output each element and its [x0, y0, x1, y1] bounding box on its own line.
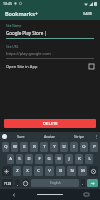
button[interactable]: K	[75, 154, 83, 164]
staticText: SAVE	[83, 11, 93, 16]
button[interactable]: DELETE	[4, 119, 96, 128]
button[interactable]: Avatar	[35, 132, 64, 141]
button[interactable]: G	[45, 154, 53, 164]
button[interactable]: B	[56, 166, 65, 176]
staticText: B	[59, 168, 62, 174]
staticText: Q	[4, 144, 8, 150]
staticText: T	[43, 144, 46, 150]
button[interactable]: Stripe	[64, 132, 93, 141]
button[interactable]: Back	[0, 189, 28, 200]
button[interactable]: SAVE	[81, 10, 95, 17]
button[interactable]: Enter	[87, 179, 98, 187]
button[interactable]: R	[30, 142, 38, 152]
button[interactable]: W	[11, 142, 18, 152]
button[interactable]: English	[31, 179, 79, 187]
button[interactable]: Voice input	[2, 134, 7, 139]
staticText: Site URL	[6, 45, 19, 49]
button[interactable]: Sure	[7, 132, 35, 141]
staticText: F	[38, 156, 41, 162]
staticText: H	[57, 156, 61, 162]
button[interactable]: Bookmarks+	[5, 10, 38, 17]
staticText: E	[23, 144, 26, 150]
staticText: Site Name	[6, 24, 22, 28]
button[interactable]: Q	[2, 142, 9, 152]
staticText: Google Play Store	[6, 30, 44, 36]
staticText: https://play.google.com	[6, 51, 51, 56]
staticText: G	[47, 156, 51, 162]
staticText: I	[73, 144, 75, 150]
button[interactable]: Period	[81, 179, 85, 187]
button[interactable]: Open Site in App	[6, 64, 94, 69]
staticText: ?123	[4, 181, 12, 186]
button[interactable]: S	[16, 154, 23, 164]
staticText: R	[33, 144, 36, 150]
button[interactable]: N	[67, 166, 76, 176]
button[interactable]: Backspace	[89, 166, 98, 176]
button[interactable]: O	[80, 142, 88, 152]
button[interactable]: L	[85, 154, 93, 164]
staticText: DELETE	[43, 121, 58, 127]
staticText: M	[81, 168, 85, 174]
staticText: L	[88, 156, 91, 162]
staticText: W	[13, 144, 17, 150]
staticText: Stripe	[74, 134, 84, 139]
button[interactable]: P	[90, 142, 98, 152]
button[interactable]: D	[25, 154, 33, 164]
staticText: K	[78, 156, 81, 162]
staticText: V	[48, 168, 51, 174]
staticText: 10:45	[3, 1, 12, 6]
staticText: Open Site in App	[6, 64, 38, 69]
button[interactable]: J	[65, 154, 73, 164]
staticText: .	[82, 181, 84, 186]
staticText: ,	[17, 181, 19, 186]
staticText: A	[9, 156, 12, 162]
staticText: U	[62, 144, 66, 150]
staticText: J	[68, 156, 70, 162]
button[interactable]: F	[35, 154, 43, 164]
button[interactable]: V	[45, 166, 54, 176]
button[interactable]: ?123	[2, 179, 13, 187]
button[interactable]: Emoji	[22, 179, 29, 187]
staticText: N	[70, 168, 74, 174]
button[interactable]: A	[7, 154, 14, 164]
button[interactable]: H	[55, 154, 63, 164]
staticText: C	[37, 168, 40, 174]
button[interactable]: T	[40, 142, 48, 152]
button[interactable]: More suggestions	[93, 132, 98, 141]
staticText: Z	[16, 168, 19, 174]
button[interactable]: Keyboard	[72, 189, 100, 200]
staticText: P	[93, 144, 96, 150]
button[interactable]: X	[23, 166, 32, 176]
button[interactable]: E	[20, 142, 28, 152]
staticText: D	[27, 156, 31, 162]
button[interactable]: M	[78, 166, 87, 176]
button[interactable]: Y	[50, 142, 58, 152]
staticText: Y	[53, 144, 56, 150]
staticText: Avatar	[44, 134, 55, 139]
staticText: English	[50, 181, 61, 185]
staticText: X	[26, 168, 29, 174]
button[interactable]: Z	[13, 166, 21, 176]
button[interactable]: C	[34, 166, 43, 176]
button[interactable]: Shift	[2, 166, 11, 176]
button[interactable]: Comma	[15, 179, 20, 187]
staticText: O	[82, 144, 86, 150]
staticText: Sure	[17, 134, 25, 139]
staticText: ⋮	[94, 134, 98, 139]
staticText: S	[18, 156, 21, 162]
button[interactable]: Home	[28, 189, 72, 200]
button[interactable]: U	[60, 142, 68, 152]
button[interactable]: I	[70, 142, 78, 152]
